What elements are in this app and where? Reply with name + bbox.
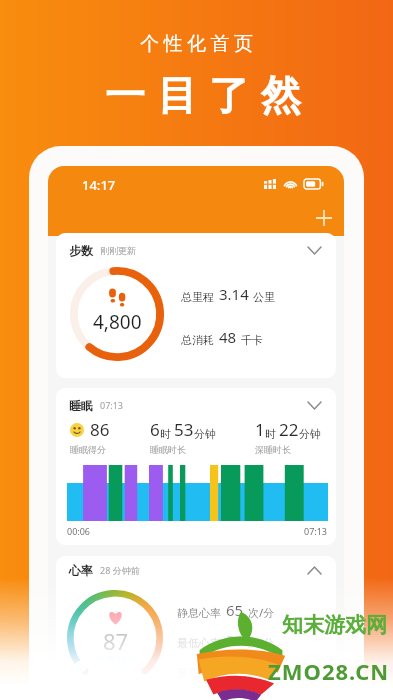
staticText: 4,800 xyxy=(93,309,142,335)
staticText: 静息心率 xyxy=(177,606,221,620)
staticText: 睡眠时长 xyxy=(150,444,186,455)
button[interactable]: Collapse xyxy=(304,395,324,415)
staticText: 一目了然 xyxy=(99,70,307,120)
staticText: 总里程 xyxy=(181,290,214,304)
staticText: 知末游戏网 xyxy=(282,612,387,638)
staticText: 最高心率 xyxy=(177,666,221,680)
staticText: 千卡 xyxy=(241,333,263,347)
staticText: 56 xyxy=(226,630,244,650)
staticText: ZMO28.CN xyxy=(268,656,390,686)
staticText: 心率 xyxy=(69,563,93,578)
staticText: 时 xyxy=(265,427,276,441)
staticText: 6 xyxy=(150,418,160,441)
staticText: 00:06 xyxy=(67,525,91,537)
staticText: 分钟 xyxy=(299,427,321,441)
staticText: 总消耗 xyxy=(181,333,214,347)
staticText: 时 xyxy=(160,427,171,441)
staticText: 07:13 xyxy=(304,525,328,537)
staticText: 98 xyxy=(226,660,244,680)
staticText: 刚刚更新 xyxy=(100,245,136,256)
staticText: 深睡时长 xyxy=(255,444,291,455)
button[interactable]: 睡眠 xyxy=(56,388,336,545)
staticText: 87 xyxy=(103,626,129,656)
staticText: 次/分 xyxy=(248,635,275,650)
staticText: 14:17 xyxy=(82,176,116,192)
staticText: 个性化首页 xyxy=(140,32,258,56)
staticText: 步数 xyxy=(69,243,93,258)
staticText: 1 xyxy=(255,418,265,441)
button[interactable]: Collapse xyxy=(304,560,324,580)
staticText: 睡眠得分 xyxy=(70,444,106,455)
staticText: 次/分 xyxy=(248,605,275,620)
staticText: 最低心率 xyxy=(177,636,221,650)
staticText: 65 xyxy=(226,600,244,620)
button[interactable]: Collapse xyxy=(304,240,324,260)
staticText: 22 xyxy=(279,418,299,441)
staticText: 48 xyxy=(219,327,237,347)
staticText: 公里 xyxy=(253,290,275,304)
button[interactable]: 心率 xyxy=(56,556,336,700)
staticText: 分钟 xyxy=(194,427,216,441)
staticText: 次/分 xyxy=(248,665,275,680)
staticText: 睡眠 xyxy=(69,398,93,413)
staticText: 3.14 xyxy=(219,284,249,304)
staticText: 53 xyxy=(174,418,194,441)
staticText: 28 分钟前 xyxy=(100,564,140,576)
staticText: 07:13 xyxy=(100,399,124,411)
staticText: 86 xyxy=(90,418,110,441)
button[interactable]: Add xyxy=(308,202,340,234)
button[interactable]: 步数 xyxy=(56,233,336,378)
